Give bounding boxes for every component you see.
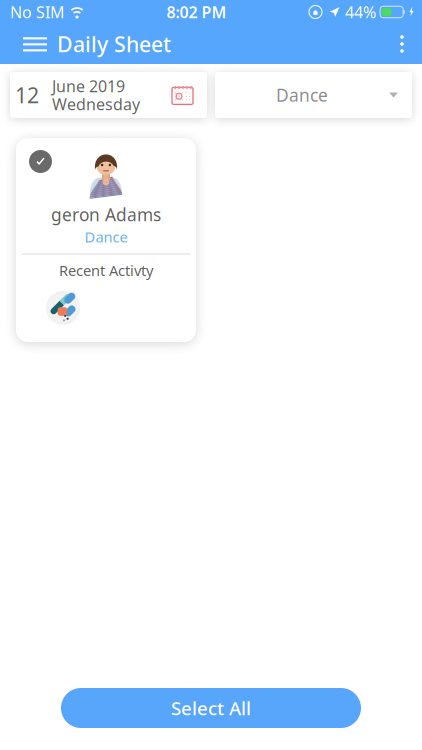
staticText: Dance bbox=[276, 83, 328, 106]
button[interactable]: geron Adams bbox=[16, 138, 196, 342]
staticText: 12 bbox=[15, 81, 39, 109]
staticText: June 2019 bbox=[52, 75, 125, 97]
staticText: 8:02 PM bbox=[166, 1, 226, 23]
staticText: Select All bbox=[171, 696, 251, 720]
staticText: 44% bbox=[345, 1, 376, 23]
button[interactable]: Dance bbox=[215, 72, 412, 118]
staticText: geron Adams bbox=[51, 203, 161, 226]
staticText: No SIM bbox=[10, 1, 65, 23]
button[interactable]: More options bbox=[386, 24, 418, 64]
staticText: Recent Activty bbox=[59, 260, 153, 280]
button[interactable]: Select All bbox=[61, 688, 361, 728]
button[interactable]: Menu bbox=[11, 24, 51, 63]
staticText: Dance bbox=[84, 227, 127, 246]
staticText: Wednesday bbox=[52, 93, 140, 115]
staticText: Daily Sheet bbox=[57, 30, 171, 58]
button[interactable]: 12 bbox=[10, 72, 207, 118]
